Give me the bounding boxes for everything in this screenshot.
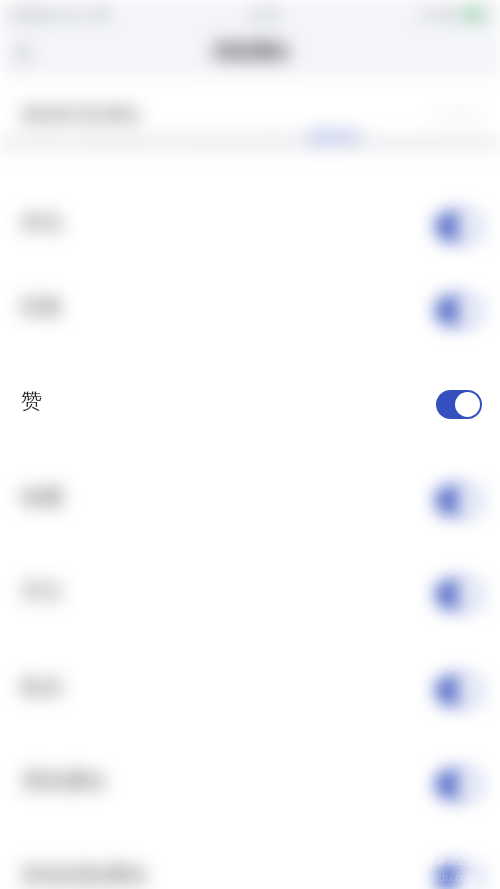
staticText: 收藏 [21,484,63,510]
button[interactable]: 评论 [0,179,500,273]
button[interactable]: Toggle notification [436,864,482,889]
button[interactable]: 查看详情 [307,128,359,144]
staticText: 接收新消息通知 [21,104,140,125]
staticText: 消息通知 [212,40,288,64]
staticText: 经验 [449,848,483,869]
button[interactable]: Toggle notification [436,390,482,419]
button[interactable]: 系统通知 [0,737,500,831]
staticText: 关注 [21,578,63,604]
button[interactable]: 回复 [0,263,500,357]
button[interactable]: Back [0,30,46,76]
button[interactable]: Toggle notification [436,296,482,325]
button[interactable]: Toggle notification [436,486,482,515]
staticText: 系统通知 [21,768,105,794]
button[interactable]: 其他消息通知 [0,831,500,889]
button[interactable]: Toggle notification [436,676,482,705]
staticText: 私信 [21,674,63,700]
button[interactable]: Toggle notification [436,212,482,241]
staticText: 回复 [21,294,63,320]
button[interactable]: 收藏 [0,453,500,547]
staticText: 86% [436,6,460,22]
button[interactable]: 赞 [0,357,500,451]
staticText: 中国移动 [8,7,56,22]
button[interactable]: Toggle notification [436,580,482,609]
staticText: Baidu [380,845,435,871]
staticText: 其他消息通知 [21,862,147,888]
button[interactable]: 关注 [0,547,500,641]
staticText: 评论 [21,210,63,236]
staticText: jingyan.baidu.com [382,869,478,884]
button[interactable]: 私信 [0,643,500,737]
staticText: 赞 [21,388,42,414]
button[interactable]: Toggle notification [436,770,482,799]
